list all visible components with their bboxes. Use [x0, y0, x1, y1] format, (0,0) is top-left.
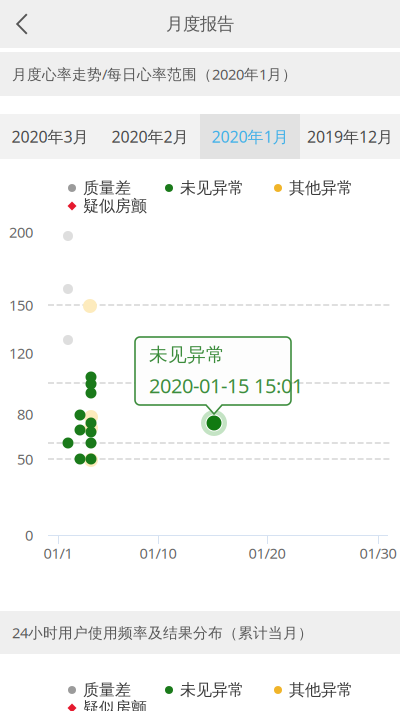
staticText: 24小时用户使用频率及结果分布（累计当月） — [12, 623, 313, 642]
button[interactable]: 2020年2月 — [100, 114, 200, 159]
button[interactable]: 2020年3月 — [0, 114, 100, 159]
staticText: 200 — [9, 222, 33, 242]
staticText: 未见异常 — [180, 680, 244, 700]
staticText: 质量差 — [83, 178, 131, 198]
staticText: 01/30 — [359, 543, 396, 563]
button[interactable]: 2019年12月 — [300, 114, 400, 159]
staticText: 150 — [9, 295, 33, 315]
staticText: 其他异常 — [289, 680, 353, 700]
staticText: 50 — [17, 449, 33, 469]
staticText: 120 — [9, 343, 33, 363]
staticText: 月度心率走势/每日心率范围（2020年1月） — [12, 64, 297, 84]
staticText: 01/10 — [139, 543, 176, 563]
button[interactable]: 2020年1月 — [200, 114, 300, 159]
staticText: 未见异常 — [149, 343, 225, 366]
staticText: 其他异常 — [289, 178, 353, 198]
staticText: 质量差 — [83, 680, 131, 700]
staticText: 未见异常 — [180, 178, 244, 198]
staticText: 01/20 — [248, 543, 285, 563]
staticText: 月度报告 — [166, 13, 234, 35]
button[interactable]: Back — [3, 1, 41, 47]
staticText: 2020年2月 — [111, 126, 188, 147]
staticText: 疑似房颤 — [83, 698, 147, 711]
staticText: 0 — [25, 525, 33, 545]
staticText: 2019年12月 — [307, 126, 393, 147]
staticText: 2020年1月 — [211, 126, 288, 147]
staticText: 01/1 — [43, 543, 72, 563]
staticText: 2020年3月 — [11, 126, 88, 147]
staticText: 2020-01-15 15:01 — [149, 372, 303, 399]
staticText: 疑似房颤 — [83, 196, 147, 216]
staticText: 80 — [17, 404, 33, 424]
